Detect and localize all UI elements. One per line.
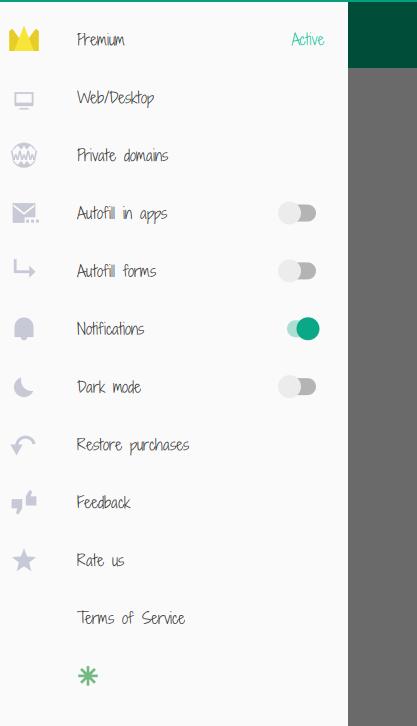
button[interactable]: Rate us	[0, 531, 348, 589]
button[interactable]: Notifications	[0, 300, 348, 358]
staticText: Autofill forms	[77, 260, 156, 282]
button[interactable]: Autofill forms	[0, 242, 348, 300]
button[interactable]: Autofill in apps	[0, 184, 348, 242]
staticText: Active	[291, 29, 324, 50]
staticText: Feedback	[77, 491, 130, 513]
staticText: Rate us	[77, 549, 124, 571]
staticText: Notifications	[77, 317, 144, 340]
staticText: Web/Desktop	[77, 86, 154, 108]
staticText: Terms of Service	[77, 607, 185, 629]
button[interactable]: Feedback	[0, 473, 348, 531]
button[interactable]: Restore purchases	[0, 415, 348, 473]
staticText: Autofill in apps	[77, 202, 167, 224]
button[interactable]: Premium	[0, 11, 348, 68]
button[interactable]: Private domains	[0, 126, 348, 184]
staticText: Premium	[77, 28, 125, 51]
staticText: Dark mode	[77, 375, 141, 398]
button[interactable]: Web/Desktop	[0, 68, 348, 126]
staticText: Restore purchases	[77, 433, 189, 456]
button[interactable]: Dark mode	[0, 358, 348, 416]
button[interactable]: About	[0, 647, 348, 705]
button[interactable]: Terms of Service	[0, 589, 348, 647]
staticText: Private domains	[77, 144, 168, 166]
